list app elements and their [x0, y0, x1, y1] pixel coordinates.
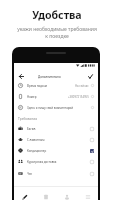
- staticText: Требования: [18, 116, 38, 120]
- staticText: Кондиционер: [27, 149, 47, 153]
- button[interactable]: Курьерская доставка: [18, 156, 94, 167]
- staticText: укажи необходимые требования к поездке: [17, 26, 97, 40]
- staticText: Курьерская доставка: [27, 160, 57, 164]
- button[interactable]: Профиль: [56, 191, 77, 200]
- staticText: +380972154955: [68, 95, 89, 99]
- button[interactable]: Чек: [18, 168, 94, 179]
- staticText: Время подачи: [27, 84, 48, 88]
- button[interactable]: Ещё: [77, 191, 98, 200]
- button[interactable]: Готово: [86, 72, 95, 81]
- staticText: С животным: [27, 138, 45, 142]
- button[interactable]: Назад: [17, 72, 26, 81]
- staticText: Багаж: [27, 127, 36, 131]
- button[interactable]: Здесь я пишу свой комментарий: [18, 102, 94, 113]
- staticText: Чек: [27, 172, 33, 176]
- button[interactable]: Время подачи: [18, 80, 94, 91]
- button[interactable]: История: [35, 191, 56, 200]
- staticText: Удобства: [32, 8, 82, 22]
- staticText: Номер: [27, 95, 37, 99]
- staticText: Дополнительно: [38, 75, 61, 79]
- button[interactable]: Номер: [18, 91, 94, 102]
- staticText: Здесь я пишу свой комментарий: [27, 106, 74, 110]
- button[interactable]: Багаж: [18, 123, 94, 134]
- button[interactable]: С животным: [18, 134, 94, 145]
- button[interactable]: Заказ: [14, 191, 35, 200]
- staticText: На сейчас: [75, 84, 89, 88]
- button[interactable]: Кондиционер: [18, 145, 94, 156]
